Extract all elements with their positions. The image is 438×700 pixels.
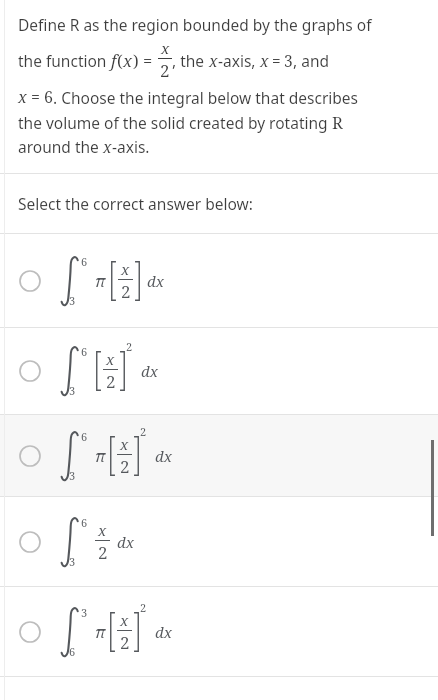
staticText: 3: [284, 50, 293, 71]
staticText: x: [209, 50, 218, 71]
staticText: (: [117, 49, 123, 71]
staticText: =: [143, 49, 153, 71]
staticText: 3: [81, 605, 88, 620]
staticText: 2: [140, 424, 147, 439]
staticText: =: [272, 50, 281, 71]
staticText: Select the correct answer below:: [18, 193, 253, 214]
staticText: 2: [106, 370, 116, 393]
staticText: 6: [81, 515, 88, 530]
staticText: 2: [121, 280, 131, 303]
staticText: around the: [18, 136, 103, 157]
staticText: 6: [69, 644, 76, 659]
staticText: dx: [141, 361, 158, 381]
staticText: 2: [120, 631, 130, 654]
button[interactable]: Option D: [0, 497, 438, 586]
staticText: x: [106, 349, 115, 369]
staticText: 3: [69, 293, 76, 308]
staticText: 3: [69, 554, 76, 569]
staticText: 6: [81, 254, 88, 269]
staticText: dx: [147, 271, 164, 291]
staticText: ): [133, 49, 139, 71]
staticText: π: [95, 621, 106, 643]
staticText: 2: [140, 600, 147, 615]
button[interactable]: Option E: [0, 587, 438, 676]
staticText: dx: [155, 446, 172, 466]
staticText: , the: [172, 50, 209, 71]
staticText: the function: [18, 50, 111, 71]
staticText: 6: [44, 86, 53, 108]
staticText: 2: [98, 541, 108, 564]
button[interactable]: Option A: [0, 234, 438, 327]
staticText: -axis.: [112, 136, 150, 157]
staticText: 2: [120, 455, 130, 478]
staticText: π: [95, 270, 106, 292]
button[interactable]: Option C: [0, 415, 438, 496]
staticText: , and: [293, 50, 329, 71]
staticText: x: [120, 610, 129, 630]
staticText: . Choose the integral below that describ…: [53, 87, 359, 108]
staticText: x: [98, 520, 107, 540]
staticText: 6: [81, 429, 88, 444]
button[interactable]: Option B: [0, 328, 438, 414]
staticText: x: [103, 136, 112, 157]
staticText: 6: [81, 344, 88, 359]
staticText: x: [18, 86, 27, 108]
staticText: x: [260, 50, 269, 71]
staticText: 3: [69, 468, 76, 483]
staticText: =: [31, 86, 40, 108]
staticText: x: [123, 49, 133, 71]
staticText: -axis,: [218, 50, 260, 71]
staticText: dx: [117, 532, 134, 552]
staticText: π: [95, 445, 106, 467]
staticText: 3: [69, 383, 76, 398]
staticText: R: [332, 111, 343, 133]
staticText: Define R as the region bounded by the gr…: [18, 14, 372, 35]
staticText: 2: [126, 339, 133, 354]
staticText: dx: [155, 622, 172, 642]
staticText: f: [111, 49, 117, 71]
staticText: x: [161, 38, 170, 58]
staticText: the volume of the solid created by rotat…: [18, 112, 332, 133]
staticText: x: [121, 259, 130, 279]
staticText: x: [120, 434, 129, 454]
staticText: 2: [160, 59, 170, 82]
